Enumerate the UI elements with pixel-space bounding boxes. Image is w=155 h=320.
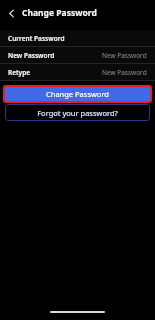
staticText: Current Password	[8, 34, 65, 43]
button[interactable]: Change Password	[3, 85, 152, 103]
staticText: New Password	[102, 68, 147, 77]
staticText: Retype	[8, 68, 31, 77]
button[interactable]: Current Password	[0, 30, 155, 46]
staticText: Forgot your password?	[37, 108, 118, 118]
staticText: Change Password	[46, 89, 109, 99]
button[interactable]: Retype	[0, 64, 155, 80]
button[interactable]: Forgot your password?	[5, 104, 150, 121]
button[interactable]: Back	[3, 5, 19, 21]
staticText: New Password	[102, 51, 147, 60]
button[interactable]: New Password	[0, 47, 155, 63]
staticText: Change Password	[22, 7, 97, 19]
staticText: New Password	[8, 51, 55, 60]
